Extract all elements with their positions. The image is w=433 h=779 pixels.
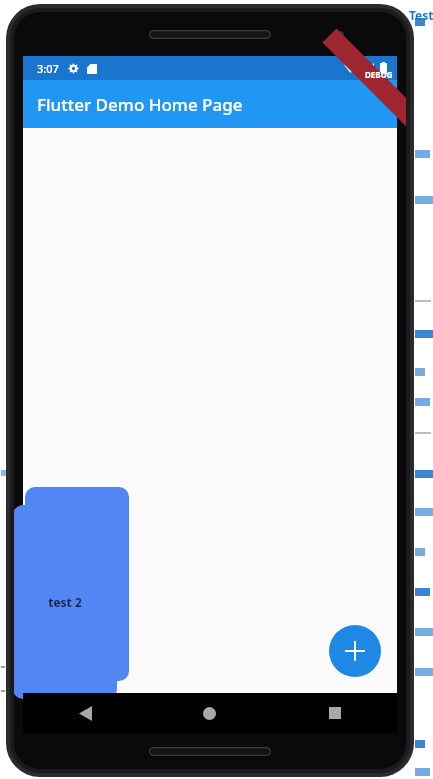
button[interactable]: test 2 bbox=[14, 505, 117, 699]
button[interactable] bbox=[25, 487, 129, 681]
staticText: Test bbox=[409, 7, 433, 23]
button[interactable]: Back bbox=[23, 693, 147, 733]
button[interactable]: Home bbox=[147, 693, 272, 733]
staticText: Flutter Demo Home Page bbox=[37, 93, 243, 116]
staticText: 3:07 bbox=[37, 61, 59, 76]
button[interactable]: Increment bbox=[329, 625, 381, 677]
button[interactable]: Recents bbox=[272, 693, 397, 733]
staticText: DEBUG bbox=[365, 69, 393, 80]
staticText: test 2 bbox=[48, 594, 82, 610]
